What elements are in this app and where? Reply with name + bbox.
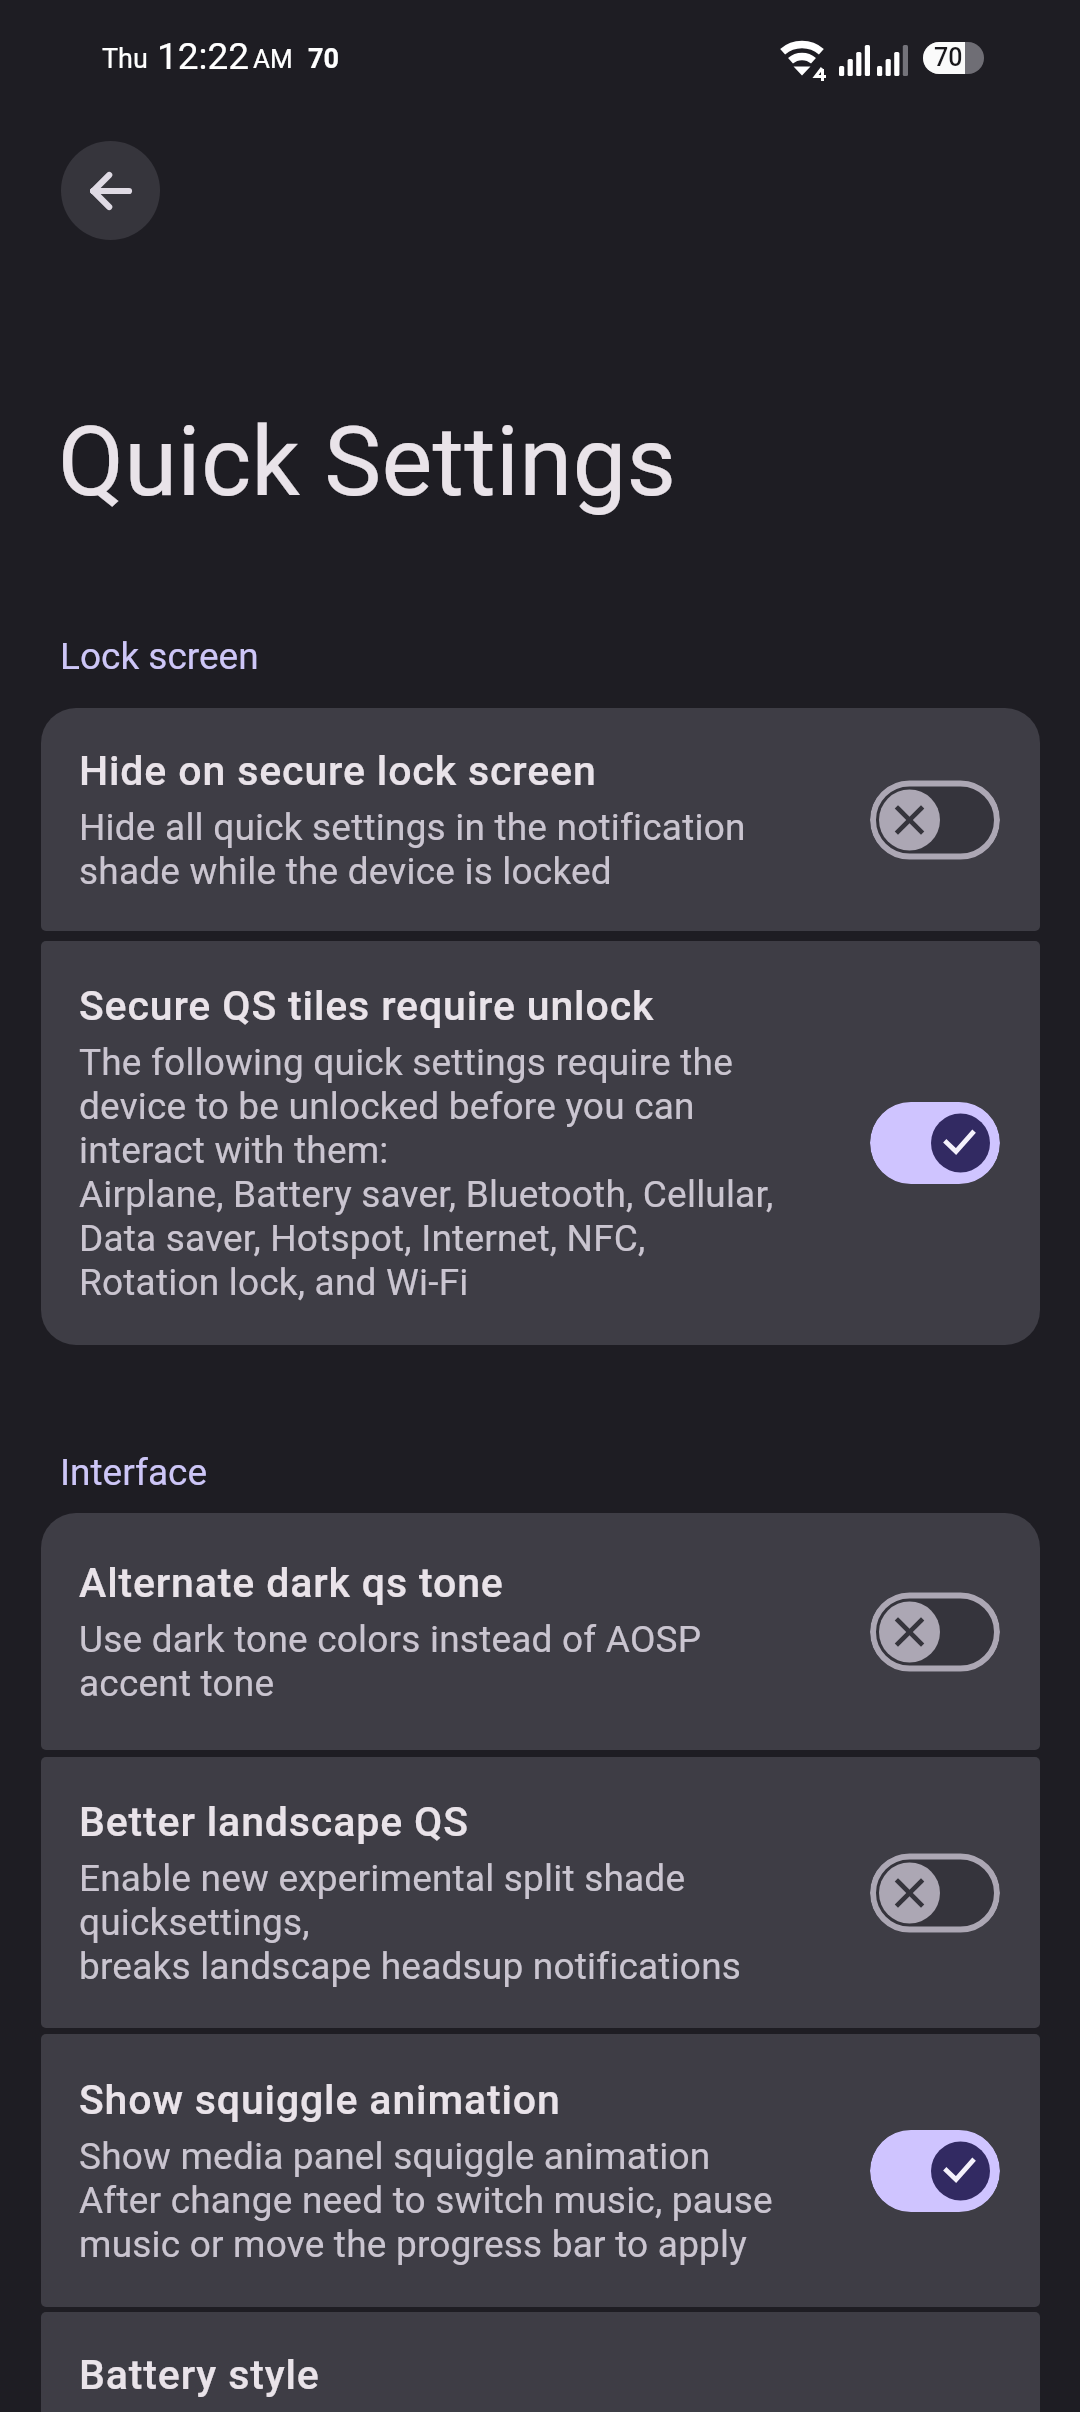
staticText: 70 (934, 43, 963, 72)
staticText: Alternate dark qs tone (79, 1559, 504, 1607)
staticText: Thu (102, 43, 148, 75)
staticText: Hide on secure lock screen (79, 747, 597, 795)
staticText: Interface (60, 1451, 208, 1494)
staticText: Quick Settings (58, 406, 677, 519)
staticText: Use dark tone colors instead of AOSP acc… (79, 1618, 702, 1705)
staticText: Show squiggle animation (79, 2076, 561, 2124)
staticText: Show media panel squiggle animation Afte… (79, 2135, 773, 2266)
button[interactable]: Battery style (41, 2312, 1040, 2412)
staticText: Battery style (79, 2351, 320, 2399)
button[interactable]: Disabled toggle (870, 1851, 1000, 1935)
button[interactable]: Hide on secure lock screen (41, 708, 1040, 931)
button[interactable]: Enabled toggle (870, 2129, 1000, 2213)
button[interactable]: Secure QS tiles require unlock (41, 941, 1040, 1345)
staticText: 70 (308, 43, 339, 75)
button[interactable]: Enabled toggle (870, 1101, 1000, 1185)
staticText: The following quick settings require the… (79, 1041, 774, 1304)
staticText: Better landscape QS (79, 1798, 469, 1846)
staticText: Secure QS tiles require unlock (79, 982, 655, 1030)
button[interactable]: Disabled toggle (870, 778, 1000, 862)
button[interactable]: Better landscape QS (41, 1757, 1040, 2028)
button[interactable]: Alternate dark qs tone (41, 1513, 1040, 1750)
staticText: AM (253, 44, 293, 74)
staticText: Lock screen (60, 635, 259, 678)
staticText: Enable new experimental split shade quic… (79, 1857, 742, 1988)
button[interactable]: Disabled toggle (870, 1590, 1000, 1674)
button[interactable]: Show squiggle animation (41, 2034, 1040, 2307)
staticText: 12:22 (157, 35, 250, 78)
button[interactable]: Back (61, 141, 160, 240)
staticText: Hide all quick settings in the notificat… (79, 806, 746, 893)
